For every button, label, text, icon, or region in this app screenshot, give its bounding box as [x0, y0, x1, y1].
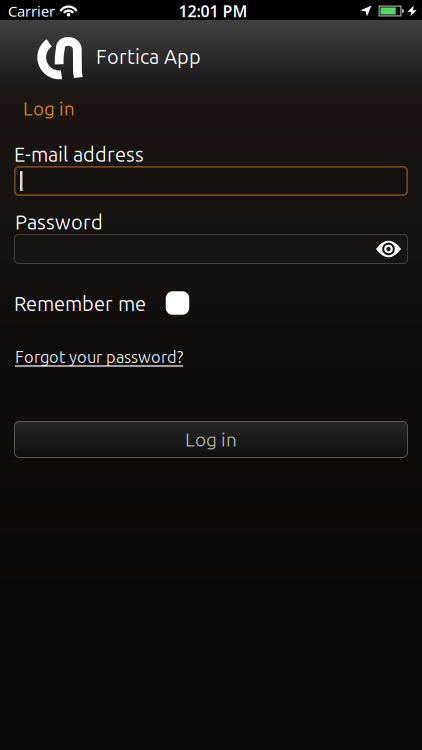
- staticText: Log in: [23, 98, 75, 119]
- button[interactable]: Show password: [376, 240, 408, 258]
- staticText: Fortica App: [96, 45, 201, 68]
- button[interactable]: Forgot your password?: [15, 348, 183, 366]
- staticText: Remember me: [14, 292, 146, 315]
- staticText: E-mail address: [14, 143, 144, 165]
- staticText: 12:01 PM: [178, 0, 247, 22]
- button[interactable]: Remember me: [166, 291, 189, 315]
- staticText: Log in: [185, 429, 237, 450]
- staticText: Password: [15, 211, 103, 233]
- staticText: Forgot your password?: [15, 348, 183, 366]
- staticText: Carrier: [8, 1, 55, 21]
- button[interactable]: Log in: [14, 421, 408, 458]
